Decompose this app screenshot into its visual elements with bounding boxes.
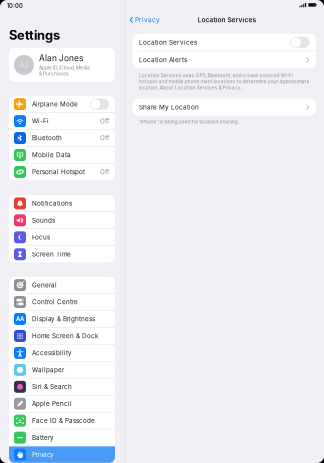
staticText: Control Centre [32,298,78,306]
staticText: Share My Location [139,103,199,111]
button[interactable]: Wi-Fi [9,113,115,129]
button[interactable]: Screen Time [9,246,115,262]
staticText: Airplane Mode [32,100,78,108]
staticText: Bluetooth [32,134,62,142]
staticText: Location Alerts [139,56,187,64]
staticText: Location Services uses GPS, Bluetooth, a… [138,72,309,91]
staticText: Privacy [135,16,160,24]
button[interactable]: Battery [9,429,115,446]
staticText: Battery [32,434,54,441]
staticText: Off [100,168,109,176]
button[interactable]: Face ID & Passcode [9,412,115,429]
button[interactable]: Siri & Search [9,379,115,395]
button[interactable]: Location Services [132,34,316,51]
button[interactable]: Airplane Mode [9,96,115,112]
staticText: AJ [19,60,28,69]
button[interactable]: Personal Hotspot [9,164,115,180]
button[interactable]: Mobile Data [9,147,115,163]
button[interactable]: Wallpaper [9,362,115,378]
staticText: Settings [9,27,60,43]
staticText: Privacy [32,451,54,458]
staticText: Siri & Search [32,383,72,391]
button[interactable]: Privacy [9,446,115,463]
staticText: Wallpaper [32,366,64,374]
button[interactable]: Share My Location [132,99,316,116]
staticText: Personal Hotspot [32,168,85,176]
button[interactable]: Privacy [129,13,160,27]
staticText: Apple ID, iCloud, Media & Purchases [39,65,90,77]
staticText: Location Services [139,38,197,46]
button[interactable]: Notifications [9,195,115,212]
staticText: AA [16,315,24,323]
button[interactable]: Control Centre [9,294,115,310]
staticText: Display & Brightness [32,315,95,323]
button[interactable]: AJ [9,48,115,82]
staticText: Location Services [198,16,257,24]
staticText: Home Screen & Dock [32,332,98,340]
button[interactable]: Focus [9,229,115,245]
staticText: Screen Time [32,250,71,258]
staticText: Off [100,134,109,142]
staticText: "iPhone" is being used for location shar… [138,119,238,125]
staticText: Accessibility [32,349,72,357]
staticText: Off [100,117,109,125]
button[interactable]: Bluetooth [9,130,115,146]
button[interactable]: AA [9,311,115,327]
button[interactable]: General [9,277,115,293]
button[interactable]: Location Alerts [132,51,316,68]
staticText: Sounds [32,217,55,224]
button[interactable]: Apple Pencil [9,395,115,412]
staticText: Wi-Fi [32,117,49,125]
staticText: 10:00 [7,2,23,9]
staticText: Focus [32,233,50,241]
staticText: Apple Pencil [32,400,72,408]
button[interactable]: Accessibility [9,345,115,361]
button[interactable]: Home Screen & Dock [9,328,115,344]
staticText: Mobile Data [32,151,71,159]
staticText: Notifications [32,200,72,207]
staticText: Alan Jones [39,53,83,63]
staticText: Face ID & Passcode [32,417,95,424]
button[interactable]: Sounds [9,212,115,228]
staticText: General [32,281,57,289]
